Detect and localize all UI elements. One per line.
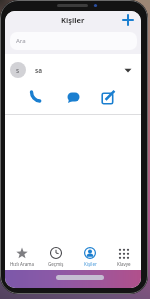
- button[interactable]: Ara: [10, 32, 137, 50]
- staticText: s: [16, 66, 20, 75]
- staticText: Ara: [16, 37, 26, 45]
- button[interactable]: Geçmiş: [39, 247, 73, 269]
- staticText: sa: [35, 66, 43, 75]
- button[interactable]: Klavye: [107, 247, 141, 269]
- staticText: Kişiler: [84, 261, 97, 267]
- button[interactable]: Kişiler: [73, 247, 107, 269]
- button[interactable]: [66, 90, 81, 105]
- button[interactable]: [122, 14, 134, 26]
- button[interactable]: Hızlı Arama: [5, 247, 39, 269]
- button[interactable]: [101, 90, 116, 105]
- staticText: Kişiler: [61, 15, 85, 25]
- staticText: Klavye: [117, 261, 131, 267]
- staticText: Geçmiş: [48, 261, 64, 267]
- staticText: Hızlı Arama: [10, 261, 35, 267]
- button[interactable]: [30, 90, 45, 105]
- button[interactable]: s: [5, 62, 141, 78]
